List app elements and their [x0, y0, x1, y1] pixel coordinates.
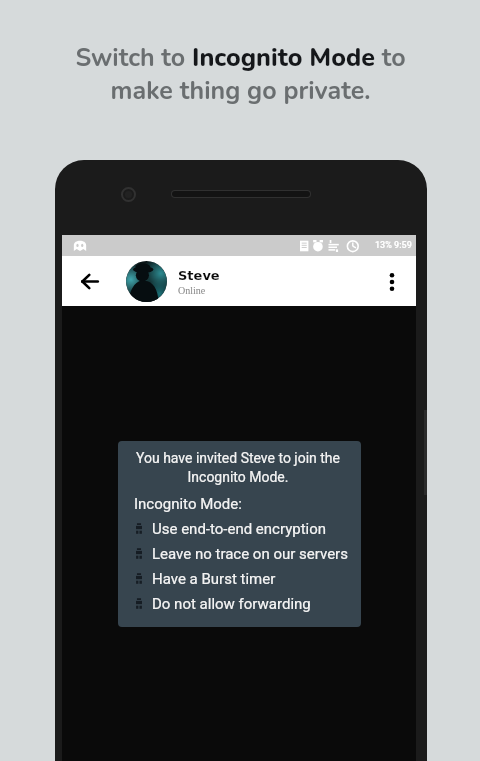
- staticText: Do not allow forwarding: [152, 595, 311, 613]
- staticText: Have a Burst timer: [152, 570, 276, 588]
- button[interactable]: More options: [370, 260, 414, 304]
- staticText: Incognito Mode:: [134, 495, 242, 513]
- staticText: Leave no trace on our servers: [152, 545, 348, 563]
- staticText: 13% 9:59: [375, 240, 412, 251]
- staticText: Steve: [178, 268, 220, 283]
- staticText: Switch to Incognito Mode to make thing g…: [75, 41, 406, 108]
- staticText: You have invited Steve to join the Incog…: [134, 450, 342, 485]
- staticText: Online: [178, 285, 206, 296]
- button[interactable]: Back: [67, 259, 112, 303]
- staticText: Use end-to-end encryption: [152, 520, 327, 538]
